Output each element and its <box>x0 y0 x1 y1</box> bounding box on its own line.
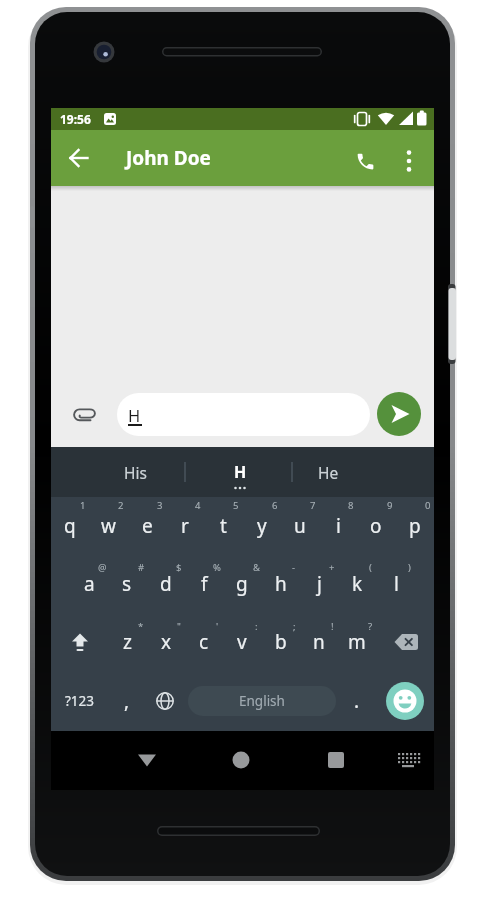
staticText: " <box>177 620 181 632</box>
staticText: y <box>257 513 267 539</box>
staticText: z <box>123 629 132 655</box>
staticText: g <box>236 571 248 597</box>
staticText: 2 <box>118 499 124 511</box>
button[interactable]: y <box>243 497 281 555</box>
button[interactable]: x <box>147 613 185 671</box>
button[interactable]: s <box>108 555 146 613</box>
staticText: ' <box>216 620 219 632</box>
button[interactable]: ?123 <box>51 671 108 731</box>
staticText: l <box>394 571 399 597</box>
staticText: e <box>142 513 153 539</box>
button[interactable]: He <box>288 447 368 497</box>
button[interactable]: . <box>338 671 375 731</box>
button[interactable]: q <box>51 497 89 555</box>
button[interactable]: r <box>166 497 204 555</box>
staticText: 7 <box>310 499 316 511</box>
staticText: s <box>122 571 132 597</box>
button[interactable]: p <box>396 497 434 555</box>
button[interactable]: English <box>188 686 336 716</box>
staticText: u <box>294 513 306 539</box>
staticText: 19:56 <box>60 111 91 127</box>
staticText: His <box>124 462 147 483</box>
button[interactable]: His <box>95 447 175 497</box>
button[interactable]: i <box>319 497 357 555</box>
button[interactable]: h <box>262 555 300 613</box>
button[interactable]: j <box>300 555 338 613</box>
button[interactable] <box>377 392 421 436</box>
staticText: & <box>253 561 260 573</box>
staticText: n <box>313 629 325 655</box>
button[interactable] <box>377 613 434 671</box>
button[interactable]: v <box>223 613 261 671</box>
button[interactable] <box>146 671 184 731</box>
staticText: c <box>199 629 209 655</box>
staticText: 3 <box>157 499 163 511</box>
button[interactable]: u <box>281 497 319 555</box>
button[interactable]: z <box>108 613 146 671</box>
staticText: ?123 <box>65 692 95 710</box>
button[interactable]: , <box>108 671 146 731</box>
staticText: j <box>317 571 322 597</box>
staticText: ! <box>331 620 334 632</box>
staticText: i <box>336 513 341 539</box>
staticText: ; <box>293 620 296 632</box>
staticText: . <box>354 688 360 714</box>
staticText: 9 <box>387 499 393 511</box>
staticText: 8 <box>348 499 354 511</box>
staticText: v <box>237 629 247 655</box>
staticText: r <box>181 513 189 539</box>
button[interactable]: a <box>70 555 108 613</box>
staticText: * <box>138 620 144 632</box>
button[interactable]: f <box>185 555 223 613</box>
button[interactable]: e <box>128 497 166 555</box>
staticText: , <box>124 688 130 714</box>
button[interactable] <box>221 740 261 780</box>
staticText: H <box>128 404 141 424</box>
button[interactable]: g <box>223 555 261 613</box>
staticText: He <box>318 462 339 483</box>
button[interactable]: m <box>338 613 376 671</box>
staticText: 4 <box>195 499 201 511</box>
staticText: ( <box>369 561 372 573</box>
staticText: 0 <box>425 499 431 511</box>
button[interactable]: H <box>200 447 280 497</box>
button[interactable] <box>127 740 167 780</box>
staticText: o <box>370 513 382 539</box>
button[interactable] <box>316 740 356 780</box>
button[interactable] <box>388 740 428 780</box>
button[interactable]: H <box>117 393 370 436</box>
staticText: $ <box>176 561 182 573</box>
staticText: English <box>239 692 285 710</box>
staticText: p <box>409 513 421 539</box>
staticText: : <box>255 620 258 632</box>
button[interactable]: b <box>262 613 300 671</box>
button[interactable]: d <box>147 555 185 613</box>
staticText: f <box>201 571 208 597</box>
button[interactable]: o <box>357 497 395 555</box>
staticText: 1 <box>80 499 86 511</box>
staticText: 5 <box>233 499 239 511</box>
button[interactable] <box>345 139 385 183</box>
button[interactable] <box>389 139 429 183</box>
staticText: x <box>161 629 172 655</box>
button[interactable]: l <box>377 555 415 613</box>
button[interactable] <box>386 682 424 720</box>
button[interactable]: w <box>89 497 127 555</box>
button[interactable]: c <box>185 613 223 671</box>
button[interactable]: k <box>338 555 376 613</box>
staticText: ) <box>408 561 411 573</box>
staticText: H <box>234 461 247 483</box>
staticText: % <box>213 561 221 573</box>
button[interactable]: n <box>300 613 338 671</box>
button[interactable]: t <box>204 497 242 555</box>
staticText: + <box>329 561 335 573</box>
staticText: # <box>138 561 145 573</box>
staticText: h <box>275 571 287 597</box>
button[interactable] <box>51 613 108 671</box>
staticText: t <box>220 513 227 539</box>
button[interactable] <box>59 138 99 178</box>
staticText: w <box>101 513 116 539</box>
staticText: a <box>84 571 95 597</box>
staticText: k <box>352 571 363 597</box>
button[interactable] <box>64 394 104 434</box>
